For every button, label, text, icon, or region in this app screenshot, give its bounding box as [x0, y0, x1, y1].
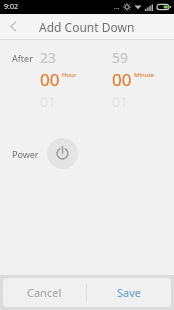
staticText: 23	[40, 48, 57, 67]
button[interactable]: Power toggle	[47, 138, 78, 169]
staticText: Save	[117, 285, 142, 300]
staticText: 9:02	[4, 2, 18, 12]
staticText: Power	[12, 148, 39, 160]
staticText: 01	[112, 92, 129, 110]
staticText: Hour	[62, 71, 77, 79]
staticText: 01	[40, 92, 57, 110]
button[interactable]: Save	[87, 278, 171, 307]
staticText: ...	[114, 2, 120, 12]
button[interactable]: Back	[0, 14, 26, 39]
staticText: 00	[40, 68, 60, 91]
staticText: 59	[112, 48, 129, 67]
staticText: Add Count Down	[39, 19, 135, 35]
button[interactable]: 23	[40, 48, 88, 110]
staticText: Cancel	[27, 285, 62, 300]
button[interactable]: Cancel	[3, 278, 86, 307]
staticText: After	[12, 52, 33, 64]
staticText: Minute	[134, 71, 154, 79]
button[interactable]: 59	[112, 48, 160, 110]
staticText: 00	[112, 68, 132, 91]
